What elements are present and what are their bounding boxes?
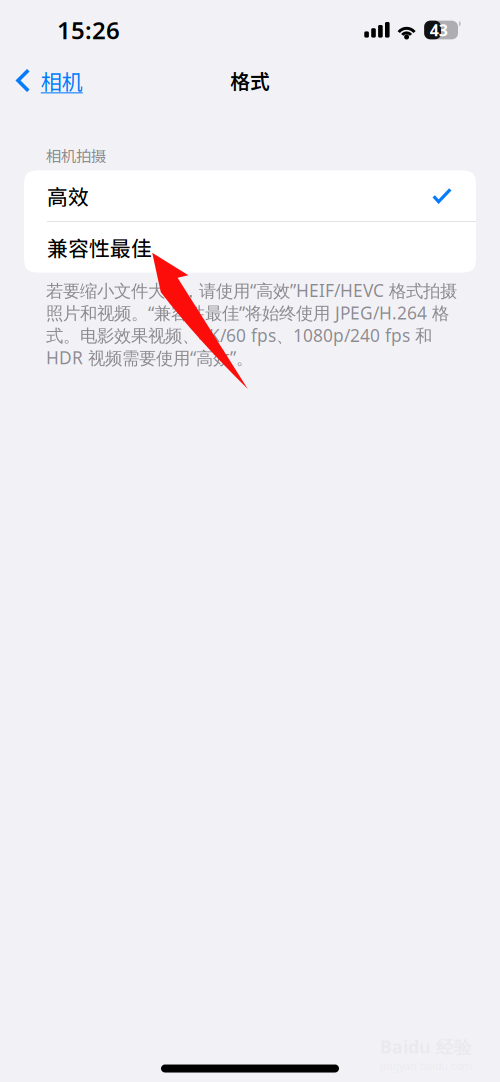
button[interactable]: 相机: [0, 60, 136, 100]
staticText: 43: [430, 19, 448, 41]
staticText: 相机: [41, 65, 83, 96]
staticText: Baidu 经验: [380, 1034, 472, 1059]
button[interactable]: 高效: [24, 170, 476, 221]
staticText: 15:26: [57, 14, 120, 46]
staticText: 格式: [230, 66, 270, 95]
button[interactable]: 兼容性最佳: [24, 222, 476, 273]
staticText: 高效: [47, 181, 89, 211]
staticText: 若要缩小文件大小，请使用“高效”HEIF/HEVC 格式拍摄照片和视频。“兼容性…: [46, 279, 457, 369]
staticText: 相机拍摄: [46, 144, 106, 166]
staticText: 兼容性最佳: [47, 232, 152, 262]
